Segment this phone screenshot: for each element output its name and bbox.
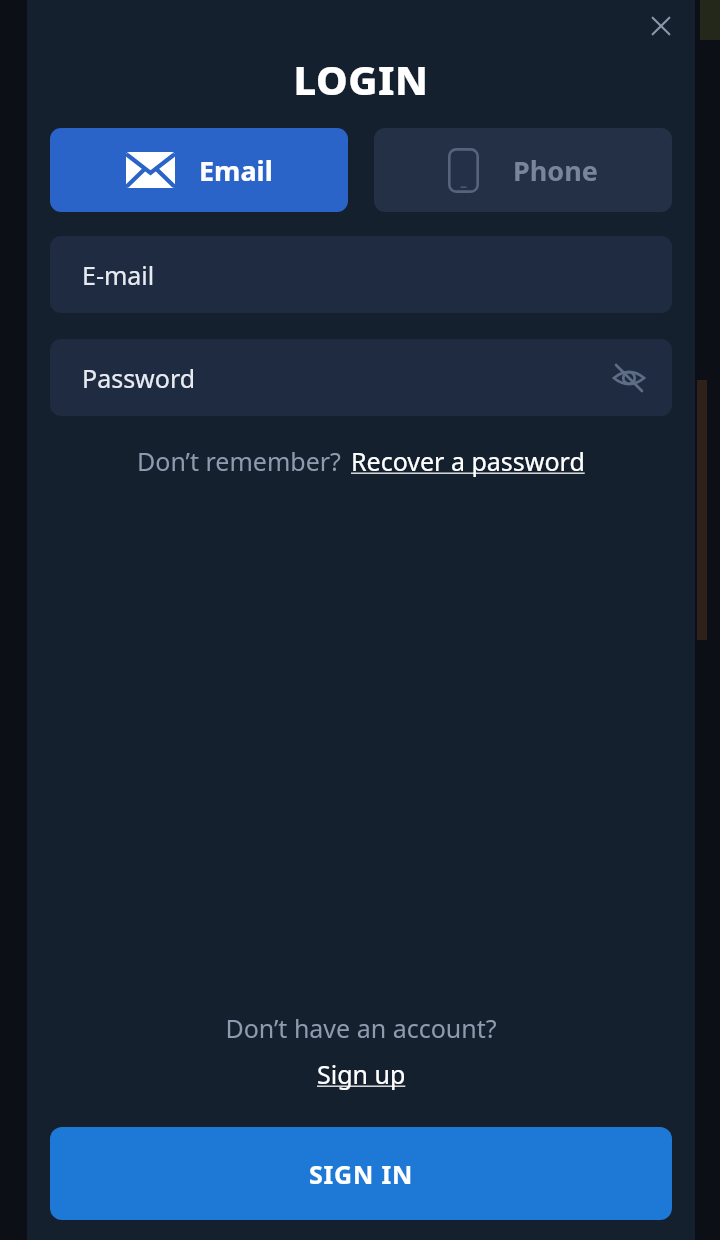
button[interactable]: Email [50, 128, 348, 212]
staticText: E-mail [82, 258, 155, 292]
staticText: Phone [513, 152, 598, 189]
staticText: Don’t remember? [137, 444, 341, 478]
staticText: Recover a password [351, 444, 585, 478]
staticText: Email [199, 152, 273, 189]
button[interactable]: Show password [603, 352, 655, 404]
button[interactable]: Phone [374, 128, 672, 212]
button[interactable]: SIGN IN [50, 1127, 672, 1220]
staticText: SIGN IN [309, 1157, 414, 1191]
button[interactable]: Close [639, 4, 683, 48]
button[interactable]: Password [50, 339, 672, 416]
staticText: Password [82, 361, 196, 395]
staticText: Don’t have an account? [27, 1011, 695, 1045]
staticText: Sign up [317, 1057, 406, 1091]
staticText: LOGIN [27, 52, 695, 106]
button[interactable]: Sign up [317, 1057, 406, 1091]
button[interactable]: Recover a password [351, 444, 585, 478]
button[interactable]: E-mail [50, 236, 672, 313]
